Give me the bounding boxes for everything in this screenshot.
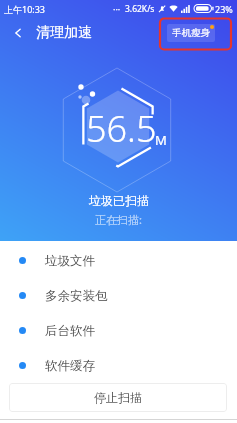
button[interactable]: 停止扫描 bbox=[9, 383, 227, 412]
staticText: 23% bbox=[215, 3, 233, 15]
staticText: 清理加速 bbox=[36, 24, 92, 42]
staticText: M bbox=[155, 131, 167, 149]
staticText: 垃圾文件 bbox=[45, 253, 95, 269]
staticText: 上午10:33 bbox=[4, 3, 46, 15]
staticText: 后台软件 bbox=[45, 323, 95, 339]
staticText: 3.62K/s bbox=[125, 3, 155, 15]
button[interactable]: Back bbox=[6, 21, 30, 45]
staticText: 多余安装包 bbox=[45, 288, 108, 304]
button[interactable]: 手机瘦身 bbox=[167, 24, 215, 42]
button[interactable]: 软件缓存 bbox=[0, 348, 237, 383]
staticText: ··· bbox=[113, 3, 121, 15]
button[interactable]: 垃圾文件 bbox=[0, 243, 237, 278]
staticText: 停止扫描 bbox=[94, 390, 142, 405]
staticText: 垃圾已扫描 bbox=[89, 193, 149, 208]
staticText: 手机瘦身 bbox=[172, 27, 210, 39]
staticText: 56.5 bbox=[86, 104, 157, 153]
button[interactable]: 多余安装包 bbox=[0, 278, 237, 313]
button[interactable]: 后台软件 bbox=[0, 313, 237, 348]
staticText: 软件缓存 bbox=[45, 358, 95, 374]
staticText: 正在扫描: bbox=[95, 212, 142, 227]
